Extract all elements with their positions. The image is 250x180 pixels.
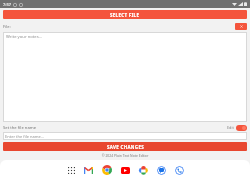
- button[interactable]: Toggle file name: [236, 125, 247, 131]
- staticText: 7:57: [3, 2, 11, 7]
- staticText: SELECT FILE: [110, 12, 140, 18]
- staticText: © 2024 Plain Text Note Editor: [0, 153, 250, 158]
- button[interactable]: Photos: [138, 165, 149, 176]
- staticText: Enter the file name...: [5, 134, 44, 139]
- button[interactable]: Edit: [227, 125, 234, 130]
- staticText: Set the file name: [3, 125, 37, 131]
- button[interactable]: Phone: [174, 165, 185, 176]
- button[interactable]: Clear file: [235, 23, 247, 30]
- button[interactable]: YouTube: [120, 165, 131, 176]
- button[interactable]: Gmail: [83, 165, 94, 176]
- staticText: SAVE CHANGES: [107, 144, 144, 150]
- staticText: Write your notes...: [6, 34, 43, 40]
- button[interactable]: SAVE CHANGES: [3, 142, 247, 151]
- button[interactable]: Chrome: [101, 164, 113, 176]
- button[interactable]: Enter the file name...: [3, 132, 247, 140]
- button[interactable]: Messages: [156, 165, 167, 176]
- staticText: File:: [3, 24, 11, 30]
- button[interactable]: Write your notes...: [3, 32, 247, 122]
- button[interactable]: All apps: [66, 165, 76, 175]
- button[interactable]: SELECT FILE: [3, 10, 247, 19]
